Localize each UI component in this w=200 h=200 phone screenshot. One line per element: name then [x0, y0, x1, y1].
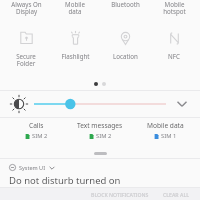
button[interactable]: BLOCK NOTIFICATIONS: [86, 189, 154, 200]
button[interactable]: Secure Folder: [3, 24, 49, 76]
staticText: Always On Display: [11, 0, 42, 16]
staticText: BLOCK NOTIFICATIONS: [91, 191, 149, 198]
button[interactable]: Flashlight: [66, 29, 85, 48]
staticText: Mobile data: [65, 0, 85, 16]
button[interactable]: Mobile data: [136, 121, 194, 140]
staticText: Calls: [29, 121, 44, 130]
button[interactable]: Brightness: [10, 95, 28, 113]
staticText: NFC: [168, 52, 180, 60]
button[interactable]: Flashlight: [52, 24, 98, 76]
button[interactable]: NFC: [165, 29, 184, 48]
staticText: Text messages: [77, 121, 123, 130]
button[interactable]: CLEAR ALL: [158, 189, 194, 200]
button[interactable]: Mobile data: [52, 0, 98, 24]
staticText: System UI: [19, 164, 46, 171]
staticText: Mobile data: [147, 121, 184, 130]
staticText: Mobile hotspot: [163, 0, 186, 16]
button[interactable]: Calls: [7, 121, 65, 140]
staticText: Location: [113, 52, 138, 60]
button[interactable]: Always On Display: [3, 0, 49, 24]
button[interactable]: Brightness slider: [34, 94, 166, 114]
button[interactable]: Location: [116, 29, 135, 48]
staticText: SIM 2: [96, 132, 112, 140]
button[interactable]: NFC: [151, 24, 197, 76]
button[interactable]: Text messages: [71, 121, 129, 140]
button[interactable]: System UI: [9, 164, 191, 187]
staticText: Flashlight: [61, 52, 90, 60]
staticText: Do not disturb turned on: [9, 174, 121, 187]
button[interactable]: Secure Folder: [17, 29, 36, 48]
staticText: SIM 2: [32, 132, 48, 140]
button[interactable]: Mobile hotspot: [151, 0, 197, 24]
staticText: Bluetooth: [111, 0, 140, 8]
staticText: CLEAR ALL: [163, 191, 189, 198]
staticText: Secure Folder: [16, 52, 36, 68]
button[interactable]: Bluetooth: [102, 0, 148, 24]
button[interactable]: Expand brightness settings: [174, 96, 190, 112]
staticText: SIM 1: [161, 132, 177, 140]
button[interactable]: Drag handle: [0, 148, 200, 158]
button[interactable]: Location: [102, 24, 148, 76]
